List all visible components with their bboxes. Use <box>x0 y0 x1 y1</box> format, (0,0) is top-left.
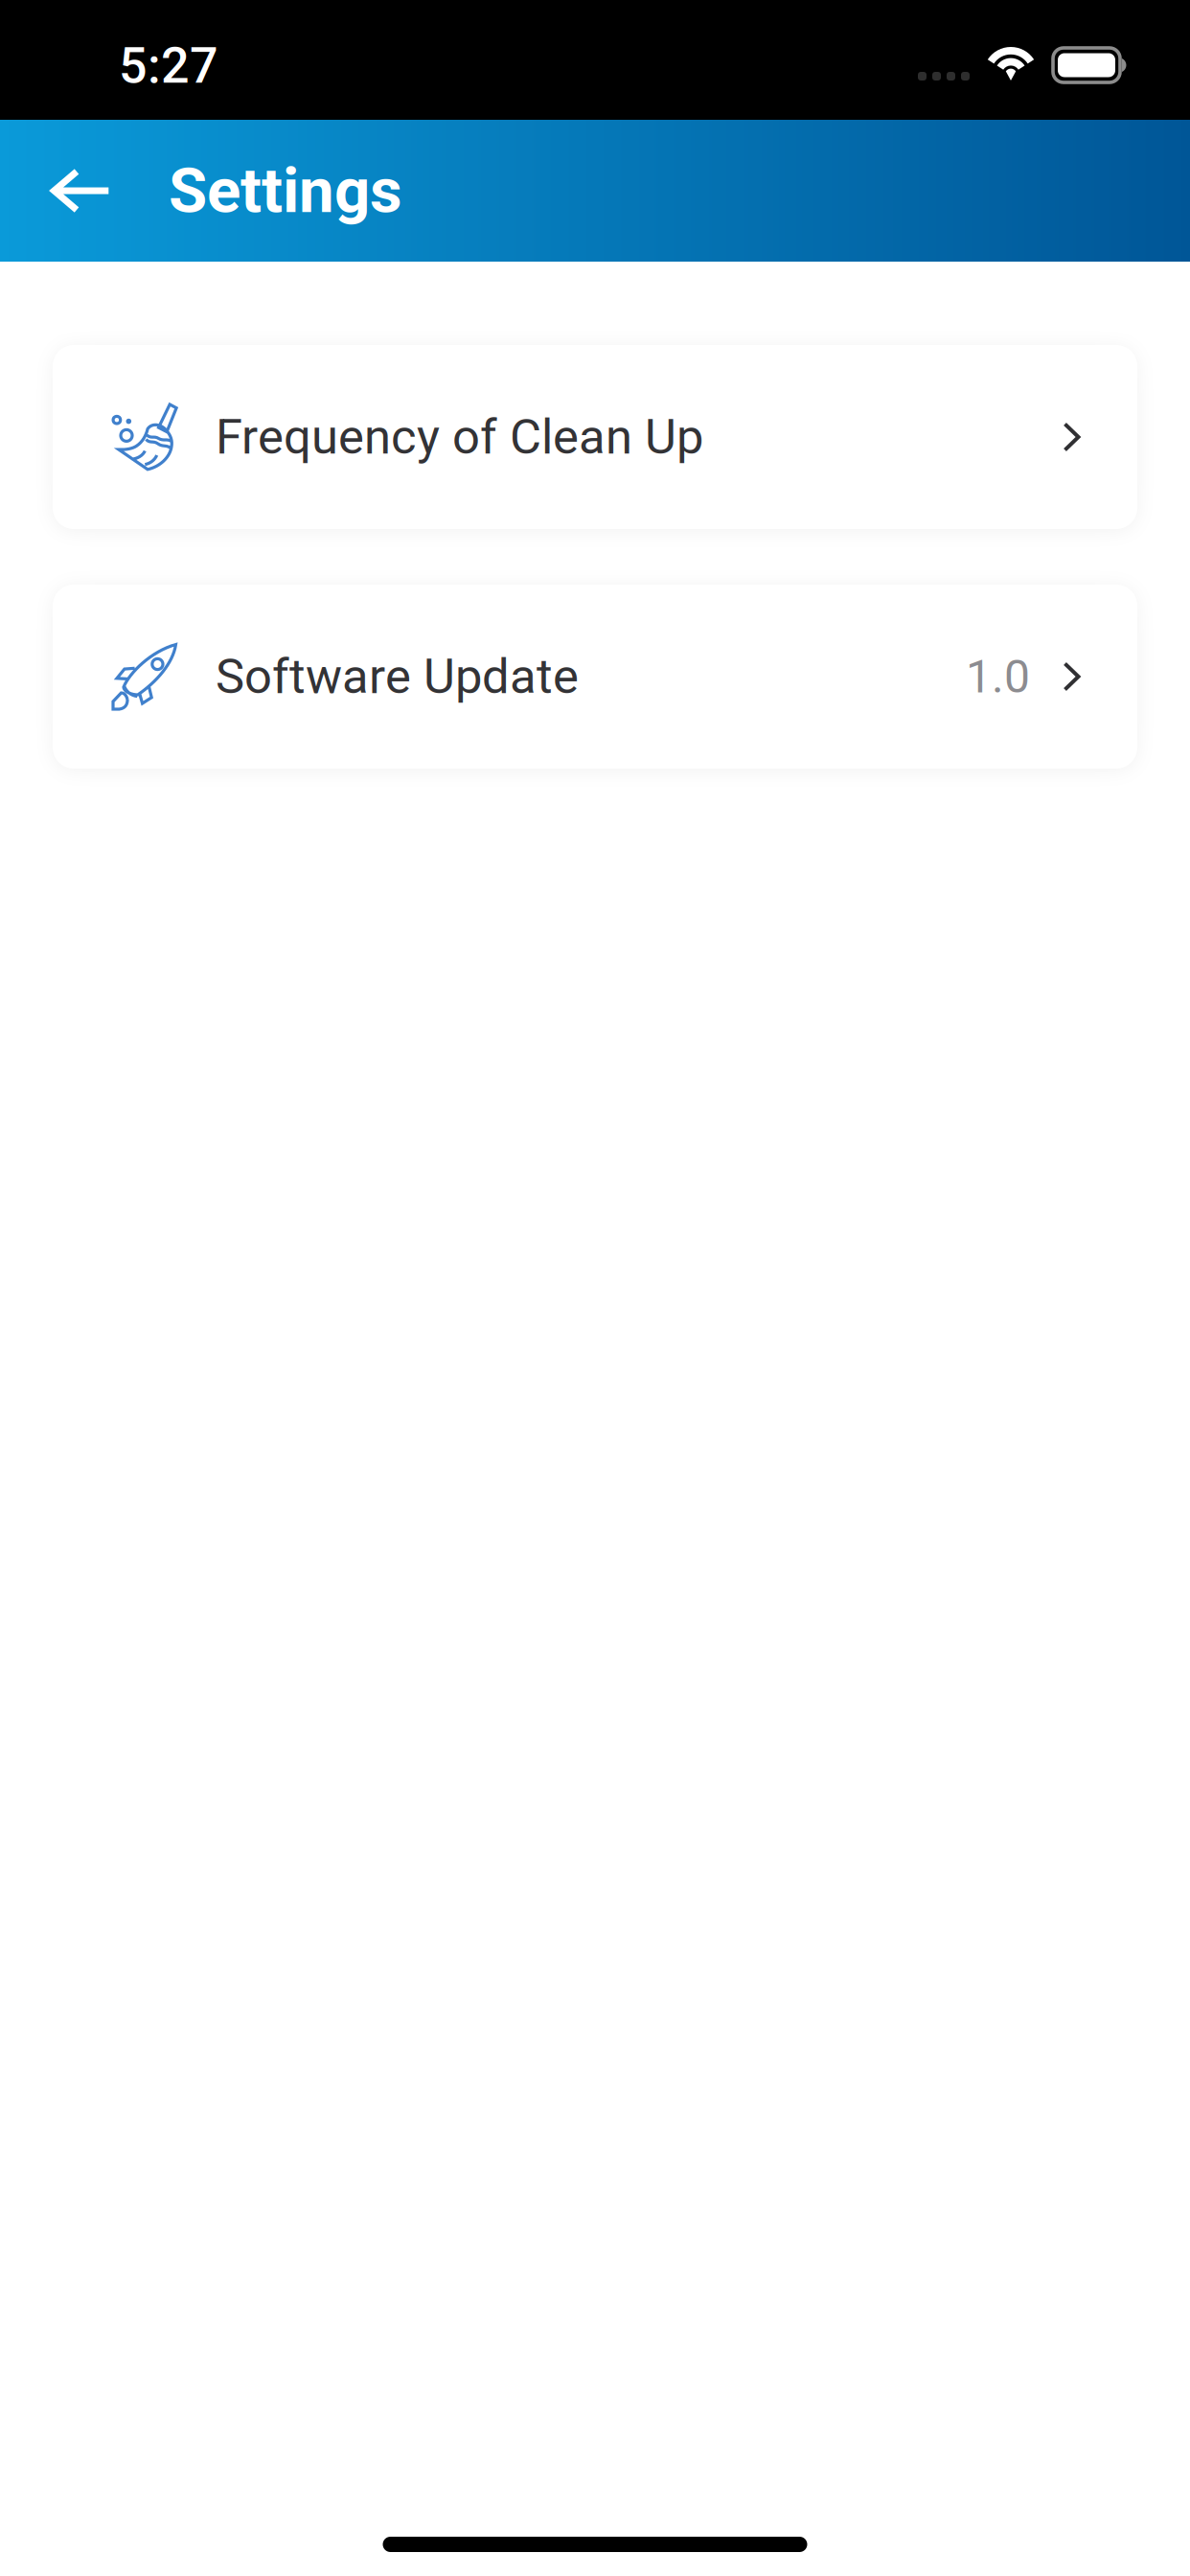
button[interactable]: Back <box>0 120 169 262</box>
button[interactable]: Software Update <box>53 585 1137 769</box>
staticText: Settings <box>169 154 402 227</box>
button[interactable]: Frequency of Clean Up <box>53 345 1137 529</box>
staticText: Software Update <box>216 648 579 705</box>
staticText: 5:27 <box>119 37 218 95</box>
staticText: Frequency of Clean Up <box>216 409 703 465</box>
staticText: 1.0 <box>966 650 1030 704</box>
